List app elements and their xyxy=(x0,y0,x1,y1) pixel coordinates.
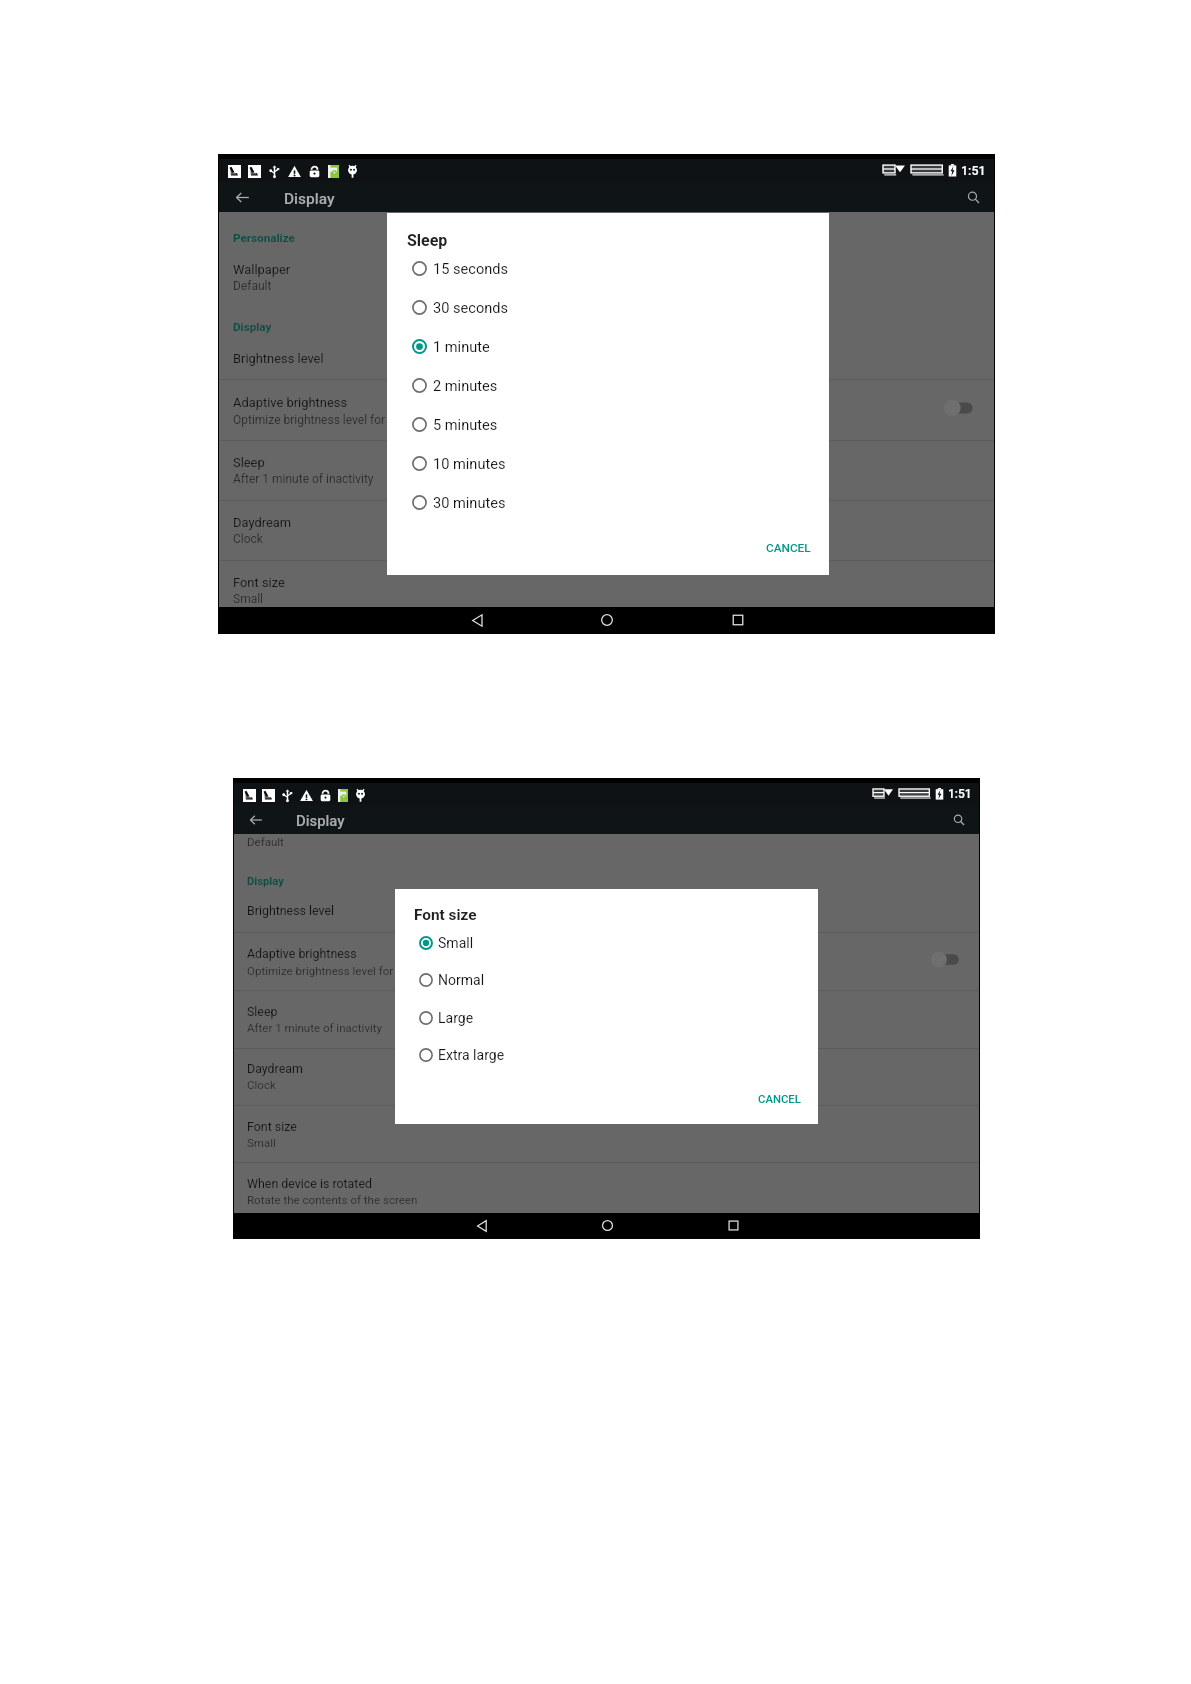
button[interactable]: Search xyxy=(962,186,984,208)
button[interactable]: Sleep xyxy=(234,996,979,1041)
staticText: When device is rotated xyxy=(247,1176,372,1191)
staticText: Small xyxy=(247,1136,276,1150)
button[interactable]: Small xyxy=(395,924,818,961)
staticText: Optimize brightness level for a xyxy=(233,413,395,427)
staticText: Extra large xyxy=(438,1047,505,1063)
button[interactable]: Home xyxy=(587,607,627,633)
button[interactable]: Adaptive brightness toggle xyxy=(928,951,961,968)
staticText: After 1 minute of inactivity xyxy=(247,1021,383,1035)
button[interactable]: CANCEL xyxy=(750,1087,809,1110)
button[interactable]: 2 minutes xyxy=(387,366,829,405)
button[interactable]: Recents xyxy=(714,1213,752,1238)
staticText: 30 seconds xyxy=(433,299,509,316)
staticText: After 1 minute of inactivity xyxy=(233,472,374,486)
staticText: 1 minute xyxy=(433,338,490,355)
button[interactable]: Back xyxy=(457,607,497,633)
button[interactable]: Back xyxy=(463,1213,501,1238)
staticText: Brightness level xyxy=(233,351,324,366)
button[interactable]: Search xyxy=(948,809,969,830)
button[interactable]: 5 minutes xyxy=(387,405,829,444)
staticText: Normal xyxy=(438,972,485,988)
staticText: Small xyxy=(438,935,474,951)
staticText: 10 minutes xyxy=(433,455,506,472)
button[interactable]: Adaptive brightness xyxy=(234,938,979,984)
button[interactable]: Wallpaper xyxy=(219,253,994,300)
button[interactable]: Font size xyxy=(234,1111,979,1156)
button[interactable]: Recents xyxy=(718,607,758,633)
button[interactable]: Large xyxy=(395,999,818,1036)
staticText: Daydream xyxy=(247,1061,303,1076)
button[interactable]: When device is rotated xyxy=(234,1168,979,1213)
staticText: Display xyxy=(233,320,272,334)
button[interactable]: Font size xyxy=(219,566,994,607)
staticText: 30 minutes xyxy=(433,494,506,511)
button[interactable]: Home xyxy=(588,1213,626,1238)
staticText: Small xyxy=(233,592,264,606)
staticText: Adaptive brightness xyxy=(233,395,348,410)
button[interactable]: Extra large xyxy=(395,1036,818,1073)
button[interactable]: 15 seconds xyxy=(387,249,829,288)
button[interactable]: 30 minutes xyxy=(387,483,829,522)
staticText: Display xyxy=(284,190,335,208)
button[interactable]: Daydream xyxy=(219,506,994,553)
button[interactable]: Wallpaper xyxy=(234,834,979,855)
staticText: Font size xyxy=(233,575,285,590)
staticText: Font size xyxy=(414,906,477,924)
staticText: 2 minutes xyxy=(433,377,498,394)
staticText: Default xyxy=(233,279,272,293)
staticText: Brightness level xyxy=(247,903,335,918)
staticText: Daydream xyxy=(233,515,292,530)
button[interactable]: Sleep xyxy=(219,446,994,493)
staticText: Clock xyxy=(247,1078,276,1092)
button[interactable]: Back xyxy=(231,186,253,208)
staticText: 15 seconds xyxy=(433,260,509,277)
button[interactable]: CANCEL xyxy=(758,536,819,560)
button[interactable]: 10 minutes xyxy=(387,444,829,483)
staticText: Wallpaper xyxy=(233,262,291,277)
staticText: Sleep xyxy=(407,231,448,250)
staticText: Display xyxy=(247,875,284,888)
staticText: Rotate the contents of the screen xyxy=(247,1193,418,1207)
staticText: Adaptive brightness xyxy=(247,946,357,961)
staticText: Display xyxy=(296,812,345,829)
staticText: CANCEL xyxy=(766,541,811,555)
staticText: Clock xyxy=(233,532,263,546)
staticText: Optimize brightness level for a xyxy=(247,964,403,978)
button[interactable]: Brightness level xyxy=(219,344,994,372)
staticText: Large xyxy=(438,1010,474,1026)
button[interactable]: Adaptive brightness toggle xyxy=(941,399,975,417)
staticText: Sleep xyxy=(233,455,265,470)
button[interactable]: 1 minute xyxy=(387,327,829,366)
staticText: Sleep xyxy=(247,1004,278,1019)
staticText: Font size xyxy=(247,1119,297,1134)
staticText: 5 minutes xyxy=(433,416,498,433)
staticText: Personalize xyxy=(233,231,295,245)
button[interactable]: 30 seconds xyxy=(387,288,829,327)
button[interactable]: Brightness level xyxy=(234,897,979,924)
staticText: 1:51 xyxy=(948,787,972,801)
button[interactable]: Adaptive brightness xyxy=(219,386,994,434)
button[interactable]: Daydream xyxy=(234,1053,979,1098)
staticText: Default xyxy=(247,835,284,849)
staticText: CANCEL xyxy=(758,1092,801,1105)
staticText: 1:51 xyxy=(961,163,986,178)
button[interactable]: Back xyxy=(245,809,266,830)
button[interactable]: Normal xyxy=(395,961,818,998)
